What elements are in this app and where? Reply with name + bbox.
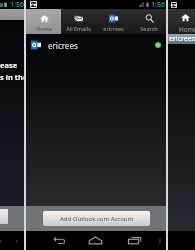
- staticText: 1:56: [10, 0, 24, 9]
- button[interactable]: Home: [88, 233, 103, 248]
- button[interactable]: More options: [156, 237, 164, 245]
- staticText: s in the: [0, 72, 24, 82]
- staticText: 1:56: [151, 0, 165, 9]
- staticText: All Emails: [66, 25, 91, 32]
- staticText: Search: [140, 25, 158, 32]
- button[interactable]: Recent apps: [127, 233, 142, 248]
- button[interactable]: Add Outlook.com Account: [43, 211, 150, 226]
- staticText: Add Outlook.com Account: [60, 215, 134, 223]
- staticText: ericrees ·: [169, 34, 195, 44]
- button[interactable]: All Emails: [61, 9, 96, 34]
- button[interactable]: Home: [26, 9, 61, 34]
- button[interactable]: Back: [52, 233, 67, 248]
- staticText: Home: [179, 25, 195, 34]
- staticText: ericrees: [48, 40, 78, 51]
- staticText: ease: [0, 60, 18, 70]
- button[interactable]: ericrees: [26, 34, 166, 56]
- staticText: Home: [36, 25, 52, 32]
- button[interactable]: ericrees: [96, 9, 131, 34]
- button[interactable]: Search: [131, 9, 166, 34]
- staticText: ericrees: [103, 25, 124, 32]
